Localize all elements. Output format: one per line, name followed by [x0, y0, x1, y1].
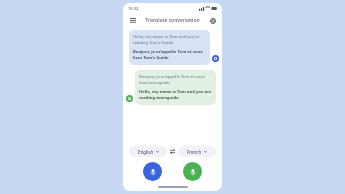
button[interactable]: Speak English: [143, 162, 162, 181]
button[interactable]: Menu: [128, 16, 137, 25]
staticText: Bonjour, je m'appelle Tom et vous lisez …: [133, 49, 206, 61]
button[interactable]: English: [129, 146, 167, 157]
button[interactable]: French: [178, 146, 216, 157]
button[interactable]: Bonjour, je m'appelle Tom et vous lisez …: [135, 70, 216, 105]
staticText: Hello, my name is Tom and you are readin…: [139, 89, 212, 101]
staticText: 10:32: [128, 6, 139, 11]
button[interactable]: Speaker: [126, 95, 133, 102]
button[interactable]: Speak French: [183, 162, 202, 181]
staticText: Translate conversation: [139, 17, 206, 24]
button[interactable]: Hello, my name is Tom and you're reading…: [129, 30, 210, 65]
button[interactable]: Swap languages: [167, 146, 178, 157]
staticText: English: [138, 149, 154, 155]
staticText: Bonjour, je m'appelle Tom et vous lisez …: [139, 74, 212, 86]
button[interactable]: Speaker: [212, 55, 219, 62]
button[interactable]: Settings: [208, 16, 217, 25]
staticText: French: [187, 149, 202, 155]
staticText: Hello, my name is Tom and you're reading…: [133, 34, 206, 46]
